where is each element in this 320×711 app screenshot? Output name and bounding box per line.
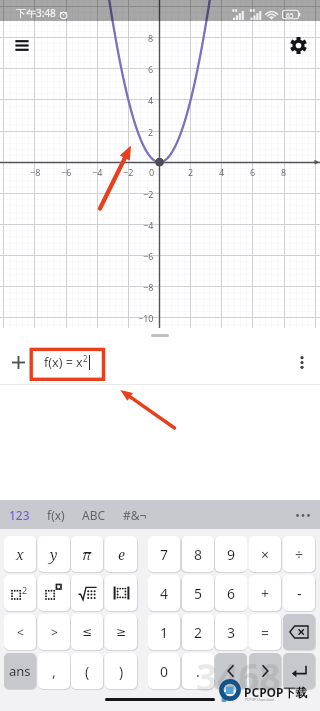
staticText: 8 — [194, 545, 203, 564]
staticText: 4 — [148, 94, 154, 106]
button[interactable]: 8 — [182, 536, 214, 572]
button[interactable]: Backspace — [283, 614, 315, 650]
staticText: −8 — [143, 281, 154, 293]
staticText: 2 — [188, 166, 194, 178]
staticText: #&¬ — [123, 507, 147, 523]
button[interactable]: Move left — [215, 653, 247, 689]
button[interactable]: power — [38, 575, 70, 611]
button[interactable]: < — [4, 614, 36, 650]
button[interactable]: square root — [71, 575, 103, 611]
staticText: 0 — [149, 166, 155, 178]
staticText: 1 — [160, 623, 169, 642]
staticText: 2 — [194, 623, 203, 642]
staticText: 3 — [227, 623, 236, 642]
staticText: ÷ — [295, 545, 304, 564]
button[interactable]: + — [249, 575, 281, 611]
button[interactable]: 123 — [9, 507, 30, 523]
button[interactable]: x — [4, 536, 36, 572]
staticText: f(x) — [47, 507, 65, 523]
button[interactable]: ≤ — [71, 614, 103, 650]
staticText: y — [50, 545, 58, 564]
staticText: 4 — [160, 584, 169, 603]
button[interactable]: Menu — [4, 27, 40, 63]
button[interactable]: ) — [105, 653, 137, 689]
staticText: 下午3:48 — [16, 6, 56, 20]
staticText: ( — [85, 662, 90, 681]
staticText: = — [261, 623, 270, 642]
button[interactable]: More — [293, 505, 313, 525]
button[interactable]: Move right — [249, 653, 281, 689]
staticText: 7 — [160, 545, 169, 564]
staticText: 123 — [9, 507, 30, 523]
button[interactable]: > — [38, 614, 70, 650]
staticText: , — [52, 662, 56, 681]
button[interactable]: . — [182, 653, 214, 689]
staticText: 3468 — [196, 651, 281, 701]
button[interactable]: 9 — [215, 536, 247, 572]
staticText: 0 — [160, 662, 169, 681]
button[interactable]: More options — [290, 350, 314, 374]
staticText: PCPOP Download — [245, 697, 274, 702]
button[interactable]: 1 — [148, 614, 180, 650]
button[interactable]: 5 — [182, 575, 214, 611]
button[interactable]: Enter — [283, 653, 315, 689]
staticText: −4 — [92, 166, 103, 178]
staticText: π — [82, 545, 92, 564]
staticText: 2 — [148, 126, 154, 138]
staticText: ≥ — [116, 625, 127, 639]
button[interactable]: 2 — [182, 614, 214, 650]
button[interactable]: Add function — [6, 350, 30, 374]
staticText: −2 — [143, 188, 154, 200]
staticText: 65 — [286, 11, 294, 20]
staticText: 2 — [83, 353, 88, 364]
staticText: 8 — [148, 32, 154, 44]
staticText: 4 — [219, 166, 225, 178]
button[interactable]: f(x) — [47, 507, 65, 523]
staticText: e — [118, 545, 125, 564]
staticText: 9 — [227, 545, 236, 564]
staticText: 6 — [148, 63, 154, 75]
button[interactable]: y — [38, 536, 70, 572]
button[interactable]: e — [105, 536, 137, 572]
staticText: < — [17, 624, 24, 640]
button[interactable]: Settings — [280, 27, 316, 63]
staticText: f(x) = x — [44, 354, 83, 371]
staticText: −2 — [123, 166, 134, 178]
button[interactable]: 4 — [148, 575, 180, 611]
button[interactable]: - — [283, 575, 315, 611]
staticText: ) — [119, 662, 124, 681]
button[interactable]: 7 — [148, 536, 180, 572]
button[interactable]: × — [249, 536, 281, 572]
button[interactable]: absolute value — [105, 575, 137, 611]
staticText: 2 — [22, 584, 28, 596]
button[interactable]: = — [249, 614, 281, 650]
button[interactable]: ≥ — [105, 614, 137, 650]
staticText: −4 — [143, 219, 154, 231]
staticText: 6 — [250, 166, 256, 178]
staticText: ≤ — [82, 625, 93, 639]
button[interactable]: #&¬ — [123, 507, 147, 523]
staticText: 6 — [227, 584, 236, 603]
staticText: −6 — [143, 250, 154, 262]
button[interactable]: ABC — [82, 507, 106, 523]
staticText: ans — [9, 662, 31, 680]
button[interactable]: , — [38, 653, 70, 689]
staticText: + — [261, 584, 270, 603]
button[interactable]: ( — [71, 653, 103, 689]
button[interactable]: x squared — [4, 575, 36, 611]
button[interactable]: 0 — [148, 653, 180, 689]
staticText: PCPOP下载 — [244, 684, 308, 700]
staticText: x — [16, 545, 24, 564]
staticText: ABC — [82, 507, 106, 523]
button[interactable]: 6 — [215, 575, 247, 611]
staticText: −8 — [30, 166, 41, 178]
button[interactable]: ans — [4, 653, 36, 689]
staticText: > — [51, 624, 58, 640]
staticText: −10 — [138, 312, 154, 324]
staticText: . — [196, 662, 200, 681]
button[interactable]: π — [71, 536, 103, 572]
button[interactable]: ÷ — [283, 536, 315, 572]
button[interactable]: 3 — [215, 614, 247, 650]
staticText: - — [297, 584, 302, 603]
staticText: × — [261, 545, 270, 564]
